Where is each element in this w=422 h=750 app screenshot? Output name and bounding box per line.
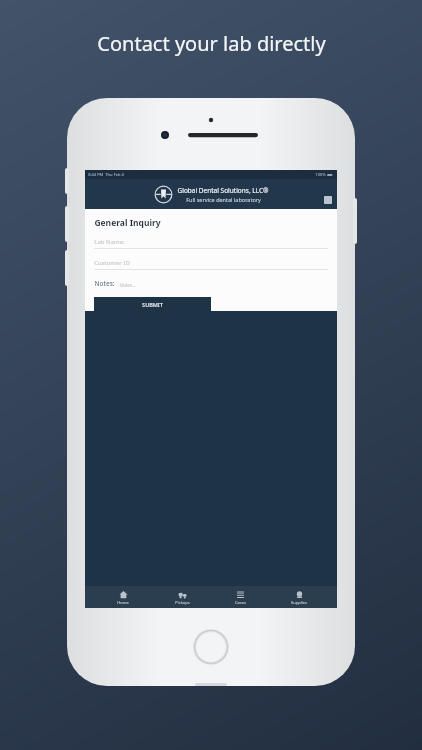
staticText: Home <box>117 600 129 605</box>
staticText: Cases <box>235 600 246 605</box>
button[interactable]: Cases <box>220 590 260 605</box>
staticText: SUBMIT <box>142 301 163 308</box>
staticText: General Inquiry <box>94 217 161 229</box>
staticText: Supplies <box>291 600 307 605</box>
staticText: Full service dental laboratory <box>186 196 261 203</box>
staticText: Global Dental Solutions, LLC® <box>177 186 269 195</box>
staticText: Contact your lab directly <box>97 30 326 57</box>
staticText: Pickups <box>175 600 190 605</box>
staticText: 100% <box>315 172 326 177</box>
button[interactable]: Menu <box>324 196 332 204</box>
staticText: Notes: <box>94 279 115 288</box>
staticText: Customer ID <box>94 259 130 267</box>
button[interactable]: Supplies <box>279 590 319 605</box>
button[interactable]: Pickups <box>162 590 202 605</box>
button[interactable]: SUBMIT <box>94 297 211 311</box>
staticText: Lab Name: <box>94 238 125 246</box>
button[interactable]: Home <box>103 590 143 605</box>
staticText: 8:44 PM Thu Feb 4 <box>88 172 124 177</box>
staticText: Notes... <box>119 282 136 288</box>
